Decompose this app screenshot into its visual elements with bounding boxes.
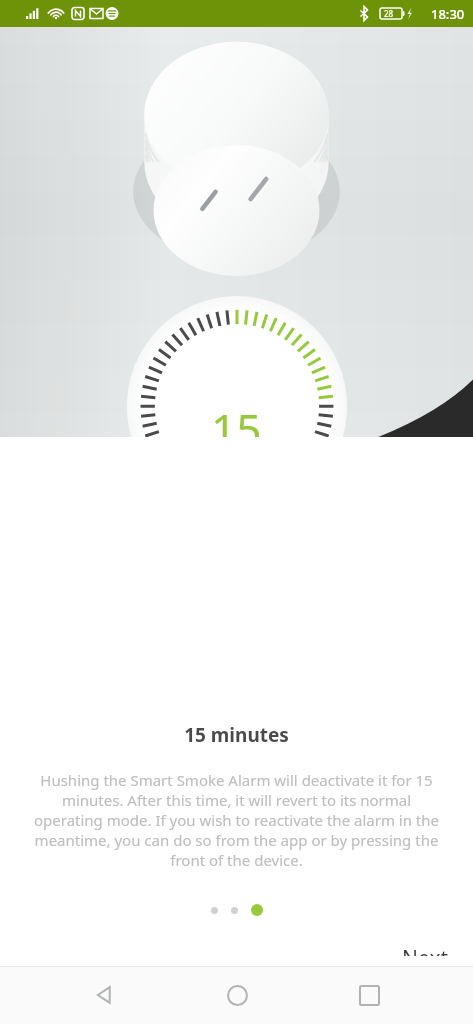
button[interactable]: Next <box>378 934 473 966</box>
button[interactable]: Page 3, current <box>251 904 263 916</box>
button[interactable]: Home <box>209 967 265 1023</box>
staticText: 28 <box>384 8 394 19</box>
button[interactable]: Page 1 <box>211 907 218 914</box>
button[interactable]: Back <box>76 967 132 1023</box>
staticText: Next <box>402 944 449 956</box>
staticText: 15 minutes <box>184 722 289 748</box>
staticText: 15 <box>211 399 262 437</box>
staticText: Hushing the Smart Smoke Alarm will deact… <box>32 770 441 870</box>
staticText: 18:30 <box>431 5 465 23</box>
button[interactable]: Page 2 <box>231 907 238 914</box>
button[interactable]: Recent apps <box>341 967 397 1023</box>
